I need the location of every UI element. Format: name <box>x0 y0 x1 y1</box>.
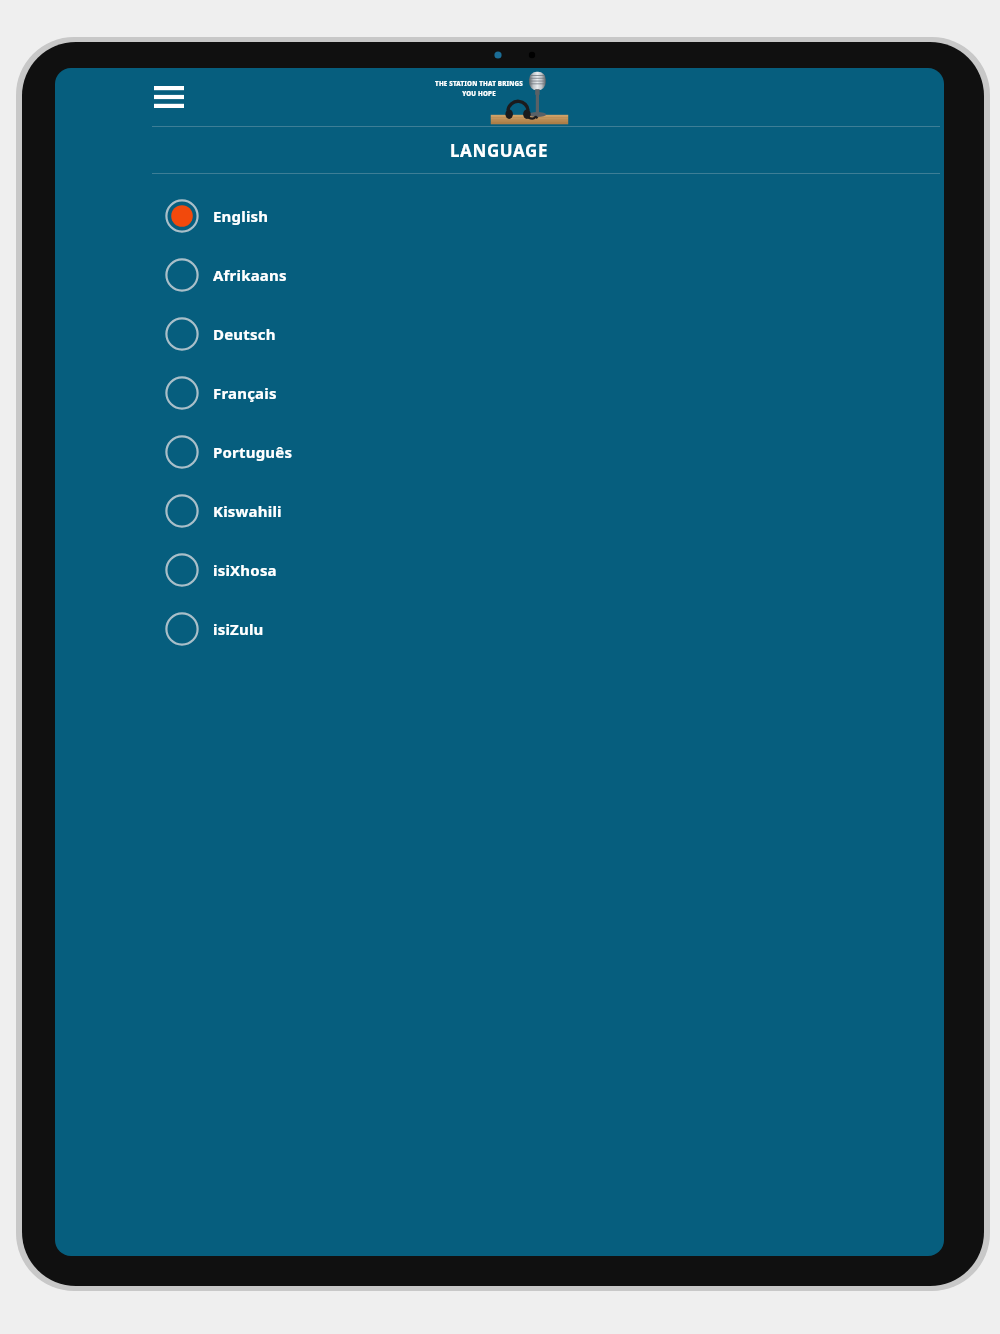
staticText: LANGUAGE <box>450 139 549 162</box>
staticText: THE STATION THAT BRINGS <box>435 79 523 87</box>
staticText: isiZulu <box>213 619 264 639</box>
button[interactable]: Português <box>55 422 944 481</box>
button[interactable]: Deutsch <box>55 304 944 363</box>
staticText: Afrikaans <box>213 265 287 285</box>
button[interactable]: isiXhosa <box>55 540 944 599</box>
staticText: Português <box>213 442 293 462</box>
staticText: isiXhosa <box>213 560 277 580</box>
button[interactable]: Français <box>55 363 944 422</box>
button[interactable]: English <box>55 186 944 245</box>
button[interactable]: Station logo <box>427 70 577 126</box>
staticText: Deutsch <box>213 324 276 344</box>
button[interactable]: Kiswahili <box>55 481 944 540</box>
button[interactable]: Open navigation menu <box>149 77 189 117</box>
staticText: YOU HOPE <box>462 89 496 97</box>
button[interactable]: isiZulu <box>55 599 944 658</box>
staticText: English <box>213 206 269 226</box>
staticText: Français <box>213 383 277 403</box>
button[interactable]: Afrikaans <box>55 245 944 304</box>
staticText: Kiswahili <box>213 501 282 521</box>
